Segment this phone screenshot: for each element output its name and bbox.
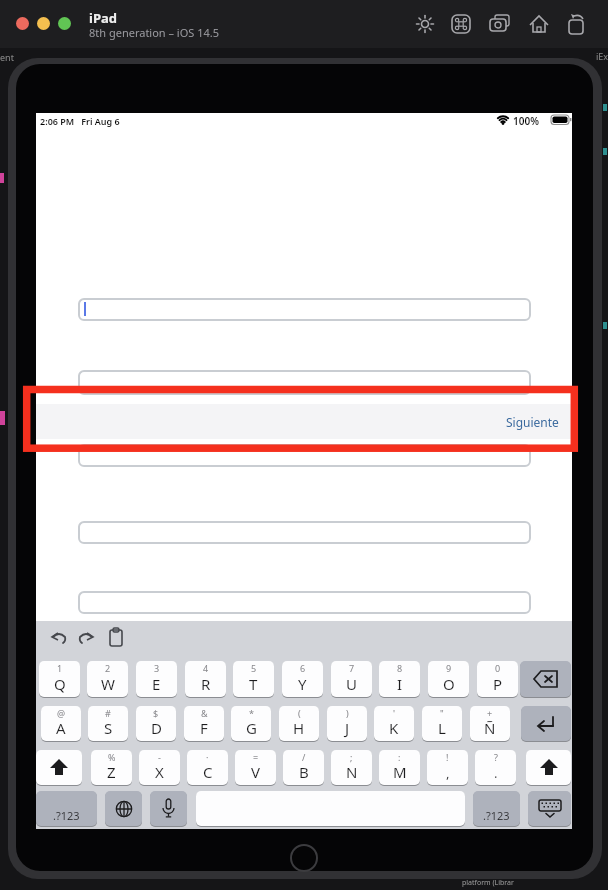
staticText: T [249,674,258,694]
staticText: 9 [446,662,452,674]
staticText: C [203,762,213,782]
button[interactable] [16,17,29,30]
button[interactable]: 8 [379,661,420,697]
button[interactable]: 1 [39,661,80,697]
button[interactable]: ? [475,750,516,785]
button[interactable]: · [187,750,228,785]
button[interactable]: 3 [136,661,177,697]
staticText: J [345,718,350,738]
staticText: 4 [203,662,209,674]
button[interactable]: ) [327,706,367,741]
staticText: : [398,751,401,763]
button[interactable]: : [379,750,420,785]
button[interactable] [78,298,531,321]
button[interactable]: 9 [428,661,469,697]
staticText: % [108,751,116,763]
staticText: ? [494,751,498,763]
button[interactable]: ' [374,706,414,741]
staticText: # [105,707,111,719]
staticText: de [452,869,461,879]
button[interactable]: = [235,750,276,785]
staticText: 5 [251,662,257,674]
button[interactable]: - [139,750,180,785]
staticText: $ [153,707,159,719]
staticText: * [249,707,254,719]
staticText: A [56,718,66,738]
staticText: 2:06 PM Fri Aug 6 [40,115,120,127]
staticText: O [443,674,455,694]
staticText: 8 [397,662,403,674]
button[interactable]: # [88,706,128,741]
staticText: B [299,762,309,782]
staticText: G [246,718,257,738]
staticText: U [346,674,357,694]
staticText: iPad [89,9,117,27]
staticText: platform (Librar [462,878,514,888]
staticText: H [293,718,305,738]
button[interactable]: 0 [477,661,518,697]
staticText: R [201,674,211,694]
button[interactable]: 4 [185,661,226,697]
button[interactable]: & [184,706,224,741]
button[interactable]: 7 [331,661,372,697]
button[interactable] [37,17,50,30]
button[interactable]: / [283,750,324,785]
staticText: " [440,707,444,719]
button[interactable]: 6 [282,661,323,697]
button[interactable]: + [470,706,510,741]
button[interactable] [58,17,71,30]
staticText: - [158,751,161,763]
staticText: 2 [105,662,111,674]
staticText: 100% [513,114,539,128]
button[interactable]: Siguiente [506,414,559,430]
button[interactable]: % [91,750,132,785]
staticText: + [487,707,493,719]
button[interactable] [78,370,531,395]
button[interactable] [521,706,571,741]
staticText: ! [446,751,449,763]
staticText: iExp [596,50,608,62]
staticText: ' [393,707,396,719]
staticText: @ [57,707,66,719]
staticText: ent [0,51,14,63]
button[interactable] [528,791,571,826]
staticText: ) [346,707,349,719]
staticText: I [397,674,403,694]
staticText: X [155,762,164,782]
staticText: L [438,718,446,738]
button[interactable]: 2 [87,661,128,697]
button[interactable]: .?123 [473,791,520,826]
button[interactable]: ; [331,750,372,785]
staticText: .?123 [483,808,510,823]
button[interactable] [105,791,142,826]
button[interactable] [78,444,531,467]
staticText: / [302,751,306,763]
staticText: , [446,764,450,782]
staticText: = [253,751,259,763]
button[interactable] [526,750,571,785]
staticText: E [152,674,161,694]
button[interactable]: 5 [233,661,274,697]
staticText: W [101,674,115,694]
button[interactable] [520,661,571,697]
button[interactable]: .?123 [36,791,97,826]
button[interactable]: " [422,706,462,741]
staticText: Q [54,674,66,694]
button[interactable]: * [231,706,271,741]
staticText: 3 [154,662,160,674]
staticText: ( [298,707,301,719]
button[interactable] [78,521,531,544]
button[interactable]: $ [136,706,176,741]
staticText: 8th generation – iOS 14.5 [89,25,220,40]
button[interactable]: @ [41,706,81,741]
staticText: P [493,674,503,694]
button[interactable] [78,591,531,614]
staticText: ; [350,751,353,763]
button[interactable]: ( [279,706,319,741]
staticText: D [151,718,162,738]
staticText: 0 [495,662,501,674]
button[interactable] [150,791,187,826]
button[interactable]: ! [427,750,468,785]
button[interactable] [36,750,82,785]
